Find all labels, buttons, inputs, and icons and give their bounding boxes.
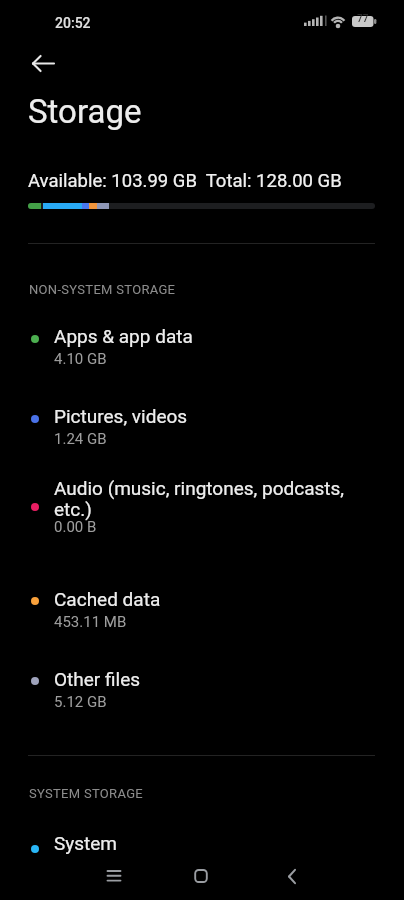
staticText: Available: 103.99 GB Total: 128.00 GB	[28, 170, 342, 192]
button[interactable]	[97, 859, 131, 893]
button[interactable]	[24, 48, 60, 84]
staticText: SYSTEM STORAGE	[29, 786, 143, 801]
staticText: NON-SYSTEM STORAGE	[29, 282, 176, 297]
staticText: 77	[357, 13, 369, 25]
staticText: System	[54, 832, 118, 854]
button[interactable]: System	[0, 812, 404, 860]
button[interactable]: Pictures, videos	[0, 380, 404, 458]
staticText: 4.10 GB	[54, 350, 107, 368]
staticText: Cached data	[54, 588, 161, 610]
staticText: Storage	[28, 92, 142, 131]
button[interactable]	[273, 859, 307, 893]
staticText: Other files	[54, 668, 141, 690]
button[interactable]: Cached data	[0, 562, 404, 640]
staticText: Apps & app data	[54, 325, 193, 347]
button[interactable]	[184, 859, 218, 893]
button[interactable]: Apps & app data	[0, 300, 404, 378]
staticText: 1.24 GB	[54, 430, 107, 448]
staticText: 0.00 B	[54, 518, 97, 536]
staticText: 20:52	[55, 15, 91, 31]
staticText: Audio (music, ringtones, podcasts,	[54, 477, 345, 499]
staticText: 5.12 GB	[54, 693, 107, 711]
staticText: etc.)	[54, 498, 92, 520]
button[interactable]: Audio (music, ringtones, podcasts,	[0, 462, 404, 560]
button[interactable]: Other files	[0, 642, 404, 720]
staticText: Pictures, videos	[54, 405, 188, 427]
staticText: 453.11 MB	[54, 613, 127, 631]
